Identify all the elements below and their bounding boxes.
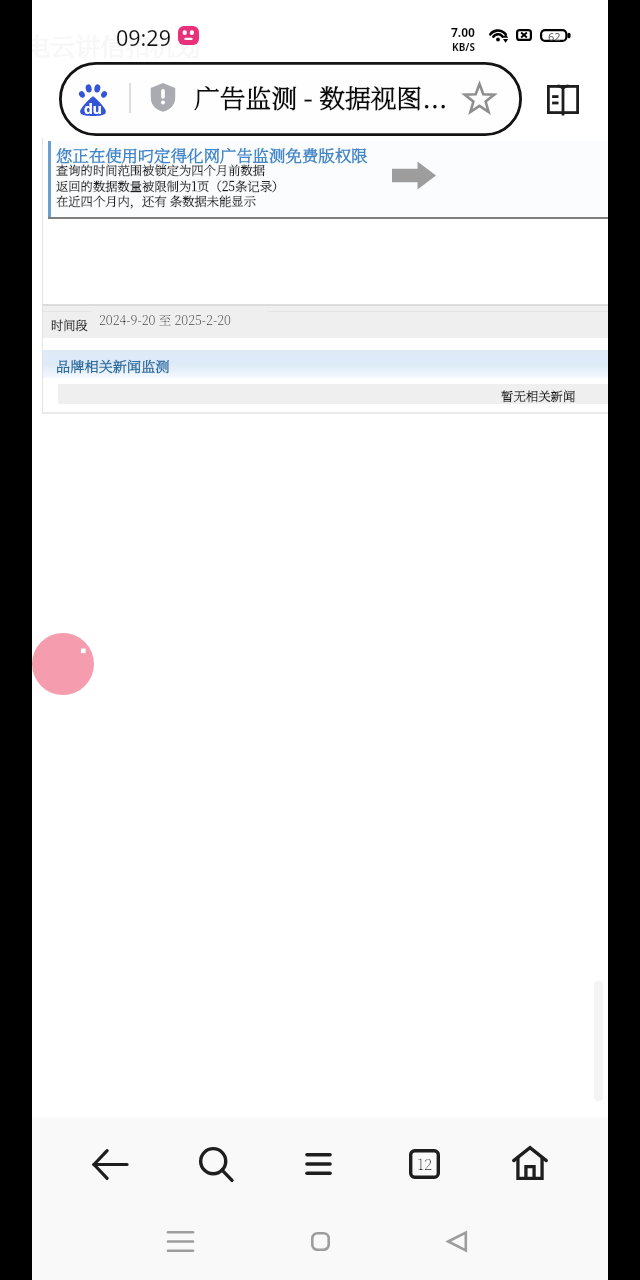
staticText: 查询的时间范围被锁定为四个月前数据 — [56, 161, 266, 179]
button[interactable]: Menu — [278, 1125, 358, 1203]
staticText: 汝电云讲信扣机划 — [32, 27, 201, 62]
button[interactable]: Recents — [140, 1203, 220, 1280]
staticText: 品牌相关新闻监测 — [56, 356, 170, 376]
button[interactable]: Home — [490, 1125, 570, 1203]
staticText: 在近四个月内，还有 条数据未能显示 — [56, 192, 256, 210]
staticText: 12 — [417, 1153, 433, 1175]
button[interactable]: Search — [176, 1125, 256, 1203]
staticText: 返回的数据数量被限制为1页（25条记录） — [56, 177, 285, 195]
button[interactable]: Tabs — [384, 1125, 464, 1203]
button[interactable]: 2024-9-20 至 2025-2-20 — [92, 309, 267, 330]
staticText: 7.00 — [451, 24, 475, 40]
staticText: 时间段 — [51, 316, 88, 334]
button[interactable]: Assistant — [32, 633, 94, 695]
button[interactable]: Home — [280, 1203, 360, 1280]
staticText: 暂无相关新闻 — [501, 387, 576, 405]
button[interactable]: Back — [70, 1125, 150, 1203]
button[interactable]: du — [59, 62, 522, 136]
button[interactable]: Reading mode — [547, 84, 579, 114]
staticText: KB/S — [452, 40, 475, 54]
button[interactable]: Back — [417, 1203, 497, 1280]
staticText: 您正在使用叼定得化网广告监测免费版权限 — [56, 143, 368, 167]
staticText: 2024-9-20 至 2025-2-20 — [99, 310, 231, 328]
staticText: du — [84, 99, 102, 118]
staticText: 09:29 — [116, 23, 171, 52]
staticText: 广告监测 - 数据视图... — [194, 78, 448, 115]
staticText: 62 — [548, 29, 561, 42]
